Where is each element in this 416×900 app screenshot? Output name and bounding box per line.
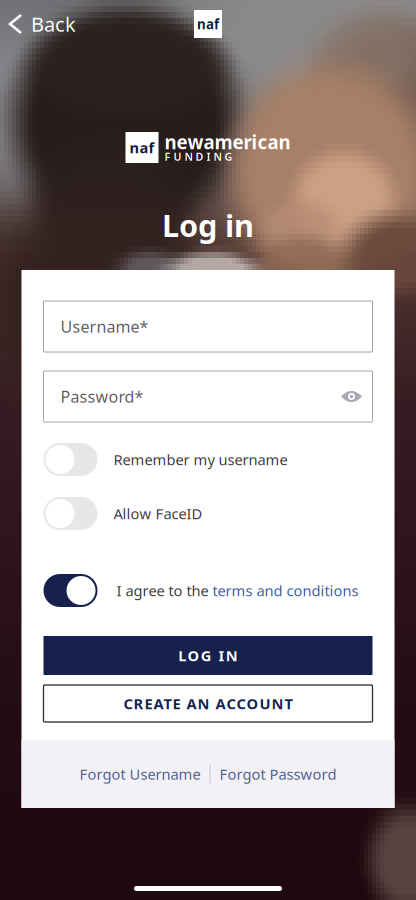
staticText: Allow FaceID xyxy=(113,504,202,523)
staticText: Remember my username xyxy=(113,450,287,469)
staticText: I agree to the xyxy=(116,581,212,600)
staticText: terms and conditions xyxy=(212,581,358,600)
button[interactable]: Show password xyxy=(330,371,372,422)
staticText: Back xyxy=(31,11,76,37)
button[interactable]: Allow FaceID xyxy=(43,497,372,530)
staticText: Password* xyxy=(60,386,143,407)
button[interactable]: CREATE AN ACCOUNT xyxy=(43,685,372,722)
staticText: Log in xyxy=(162,205,254,245)
staticText: newamerican xyxy=(164,130,290,154)
button[interactable]: Back xyxy=(0,2,90,46)
button[interactable]: I agree to the xyxy=(43,574,372,607)
staticText: F U N D I N G xyxy=(164,149,232,164)
staticText: Forgot Password xyxy=(219,764,336,784)
staticText: CREATE AN ACCOUNT xyxy=(123,694,292,713)
button[interactable]: Forgot Username xyxy=(79,754,200,794)
button[interactable]: LOG IN xyxy=(43,636,372,675)
staticText: LOG IN xyxy=(178,646,238,665)
staticText: Forgot Username xyxy=(79,764,200,784)
button[interactable]: Remember my username xyxy=(43,443,372,476)
staticText: naf xyxy=(197,15,219,33)
staticText: naf xyxy=(129,138,154,157)
button[interactable]: Forgot Password xyxy=(219,754,336,794)
staticText: Username* xyxy=(60,316,148,337)
